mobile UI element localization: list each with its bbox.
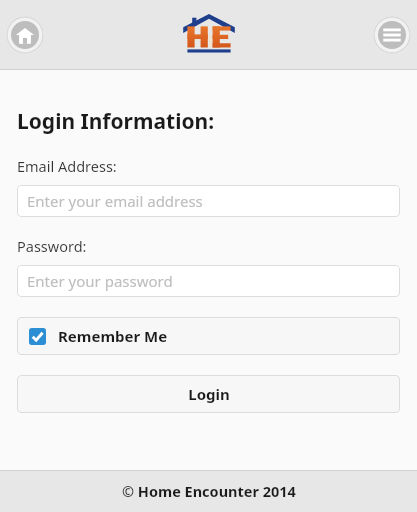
staticText: Enter your password — [27, 271, 173, 291]
button[interactable]: Menu — [373, 16, 411, 54]
staticText: Password: — [17, 236, 87, 256]
staticText: © Home Encounter 2014 — [122, 481, 296, 501]
staticText: Login — [188, 384, 230, 404]
button[interactable]: Enter your email address — [17, 185, 400, 217]
staticText: Email Address: — [17, 156, 117, 176]
button[interactable]: Home — [6, 16, 44, 54]
button[interactable]: Login — [17, 375, 400, 413]
staticText: Login Information: — [17, 107, 215, 136]
button[interactable]: Remember Me — [17, 317, 400, 355]
button[interactable]: Enter your password — [17, 265, 400, 297]
staticText: Remember Me — [58, 326, 168, 346]
staticText: Enter your email address — [27, 191, 203, 211]
